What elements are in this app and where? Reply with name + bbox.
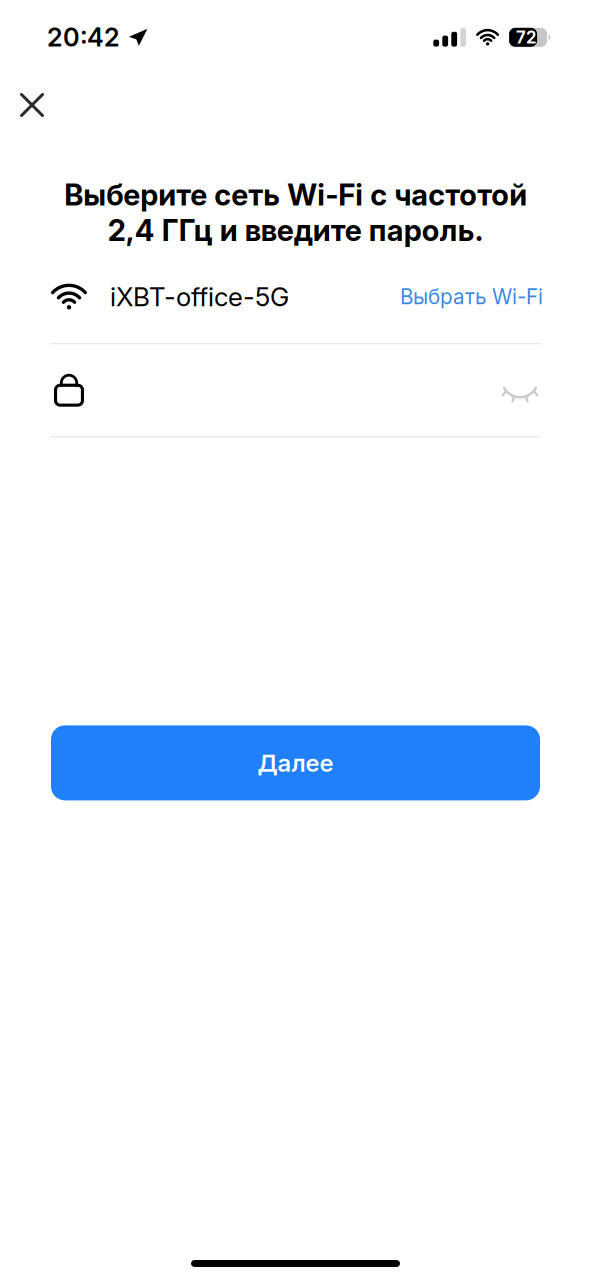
staticText: Выбрать Wi-Fi bbox=[400, 284, 543, 309]
button[interactable]: Далее bbox=[51, 725, 540, 800]
staticText: 20:42 bbox=[47, 22, 120, 53]
button[interactable]: Show password bbox=[493, 365, 548, 416]
button[interactable]: Close bbox=[0, 60, 60, 135]
staticText: iXBT-office-5G bbox=[110, 281, 289, 312]
staticText: Выберите сеть Wi-Fi с частотой 2,4 ГГц и… bbox=[64, 177, 527, 248]
staticText: Далее bbox=[257, 748, 333, 777]
button[interactable]: iXBT-office-5G bbox=[0, 260, 591, 343]
staticText: 72 bbox=[516, 27, 536, 47]
button[interactable]: Password bbox=[48, 344, 493, 436]
